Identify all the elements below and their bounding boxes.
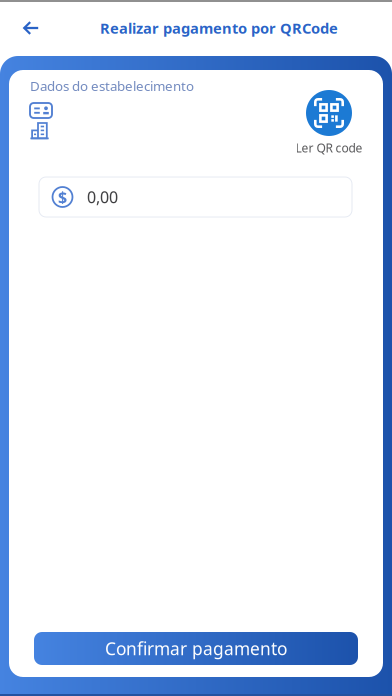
staticText: Ler QR code xyxy=(295,140,362,156)
button[interactable]: Confirmar pagamento xyxy=(34,632,358,665)
staticText: Dados do estabelecimento xyxy=(30,77,194,95)
button[interactable]: Ler QR code xyxy=(293,90,365,156)
button[interactable]: Back xyxy=(12,6,50,50)
staticText: Confirmar pagamento xyxy=(105,637,287,660)
staticText: Realizar pagamento por QRCode xyxy=(100,18,338,38)
staticText: 0,00 xyxy=(87,186,118,208)
staticText: $ xyxy=(58,186,67,208)
